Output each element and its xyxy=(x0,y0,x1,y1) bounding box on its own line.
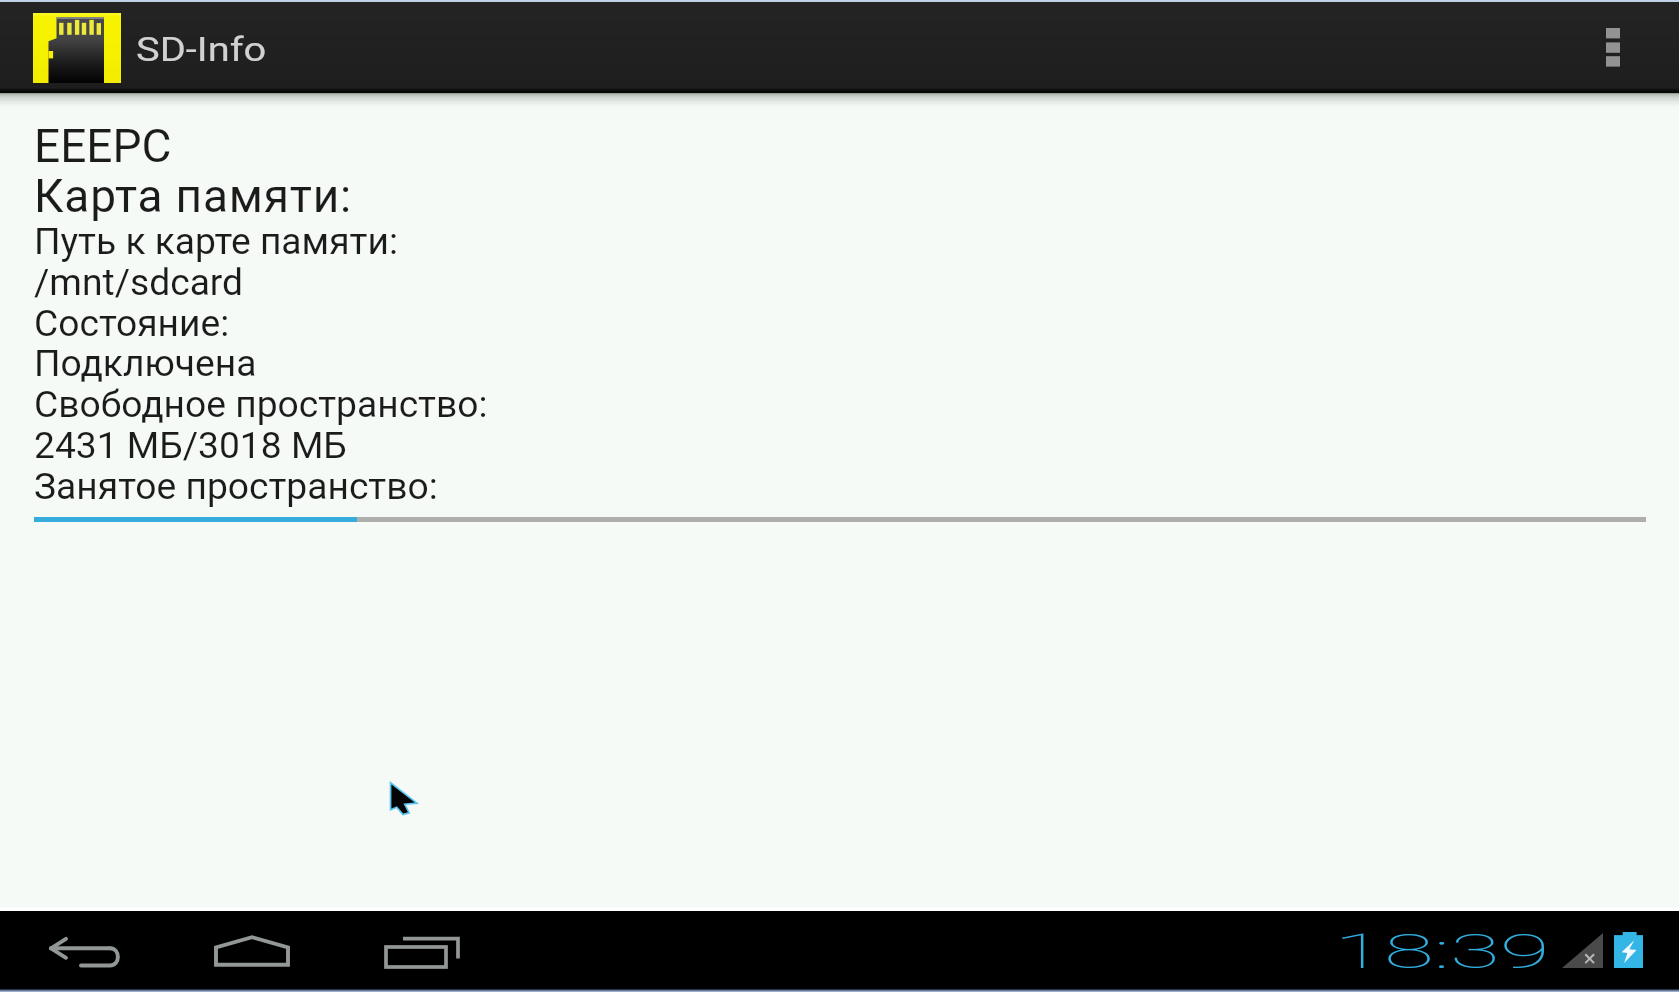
staticText: 18:39 xyxy=(1334,923,1550,980)
button[interactable]: More options xyxy=(1569,0,1657,93)
staticText: Свободное пространство: xyxy=(34,382,488,426)
staticText: SD-Info xyxy=(136,30,267,69)
button[interactable]: Home xyxy=(176,911,328,992)
staticText: EEEPC xyxy=(34,119,172,173)
staticText: Путь к карте памяти: xyxy=(34,219,398,263)
staticText: Карта памяти: xyxy=(34,169,352,223)
staticText: Занятое пространство: xyxy=(34,464,438,508)
staticText: Состояние: xyxy=(34,301,230,345)
button[interactable]: Recent apps xyxy=(348,911,492,992)
button[interactable]: Back xyxy=(0,911,164,992)
staticText: 2431 МБ/3018 МБ xyxy=(34,423,347,467)
staticText: /mnt/sdcard xyxy=(34,260,244,304)
staticText: Подключена xyxy=(34,341,257,385)
